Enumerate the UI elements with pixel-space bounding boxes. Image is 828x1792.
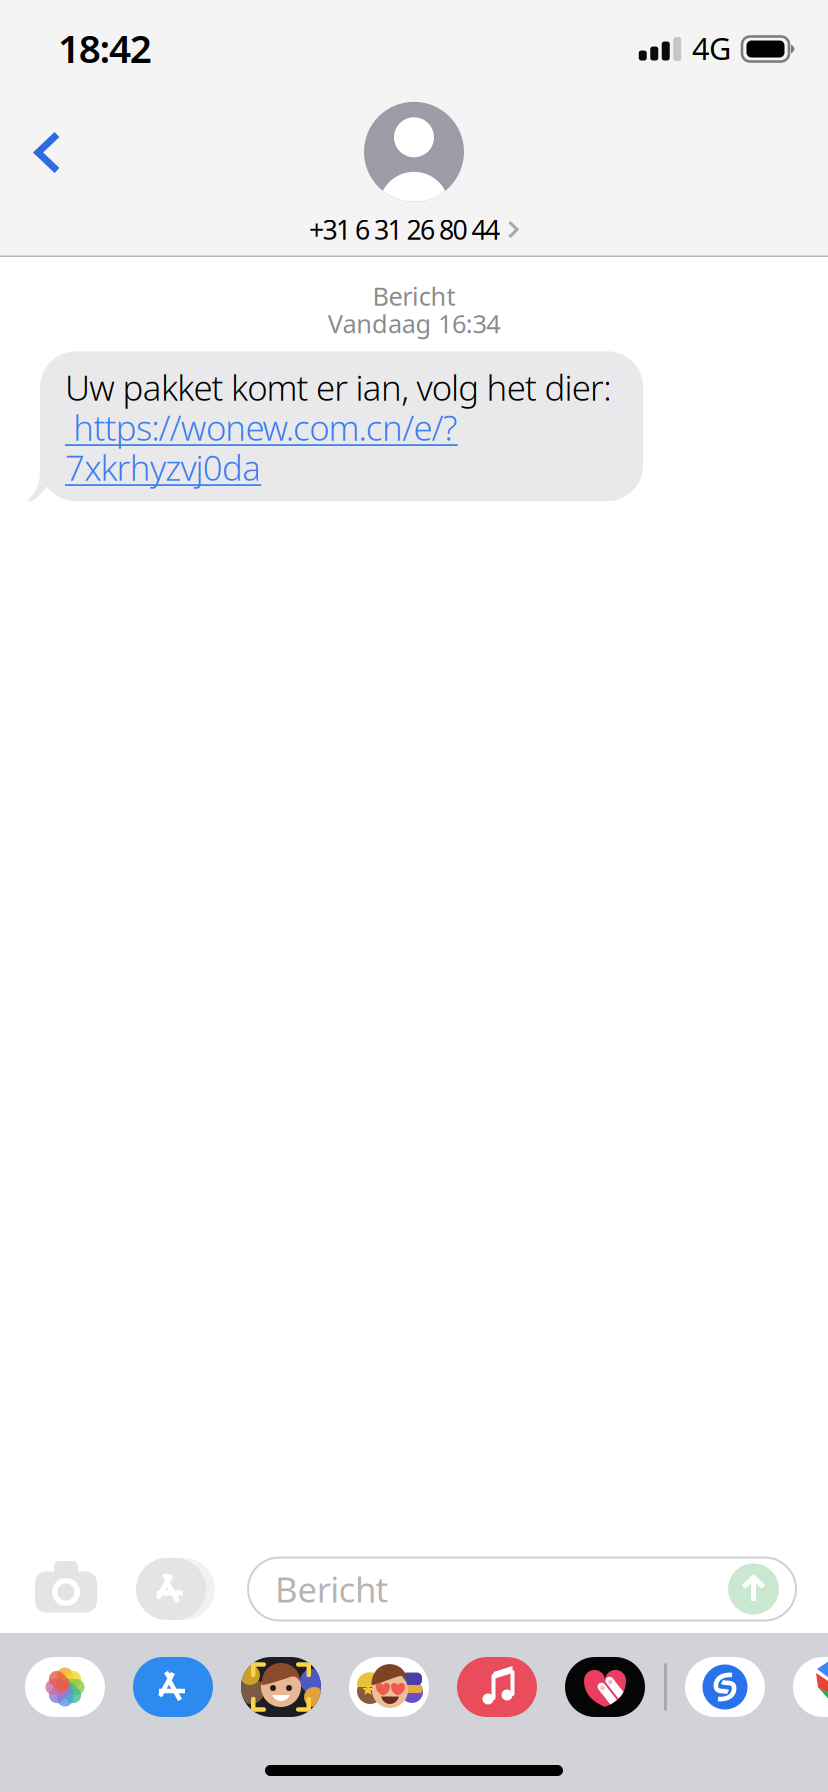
button[interactable]: App Store <box>133 1657 213 1717</box>
button[interactable]: Maps <box>793 1657 828 1717</box>
staticText: Uw pakket komt er ian, volg het dier: <box>65 364 611 410</box>
button[interactable]: Music <box>457 1657 537 1717</box>
button[interactable]: Stickers <box>349 1657 429 1717</box>
staticText: 18:42 <box>58 22 152 74</box>
staticText: +31 6 31 26 80 44 <box>309 212 500 247</box>
staticText: Bericht <box>275 1566 388 1612</box>
staticText: 7xkrhyzvj0da <box>65 444 261 490</box>
button[interactable]: Digital Touch <box>565 1657 645 1717</box>
button[interactable]: Bericht <box>248 1557 796 1620</box>
staticText: 4G <box>692 28 731 68</box>
button[interactable]: Memoji <box>241 1657 321 1717</box>
button[interactable]: Apps <box>131 1551 211 1627</box>
button[interactable]: Photos <box>25 1657 105 1717</box>
button[interactable]: Camera <box>33 1551 99 1627</box>
staticText: Vandaag 16:34 <box>328 307 500 340</box>
staticText: Bericht <box>373 279 455 313</box>
staticText: https://wonew.com.cn/e/? <box>65 404 458 450</box>
button[interactable]: Shazam <box>685 1657 765 1717</box>
button[interactable]: Back <box>11 107 85 197</box>
